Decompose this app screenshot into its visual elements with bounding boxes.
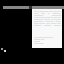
staticText: Eligendi optio cumque nihil impedit quo … — [34, 38, 45, 44]
staticText: Nam libero tempore cum soluta nobis est — [34, 36, 55, 38]
staticText: Sed ut perspiciatis unde omnis iste natu… — [34, 10, 61, 16]
button[interactable]: Sed ut perspiciatis unde omnis iste natu… — [32, 9, 62, 48]
staticText: At vero eos et accusamus iusto odio dign… — [34, 16, 61, 26]
button[interactable]: Toolbar — [3, 6, 64, 9]
